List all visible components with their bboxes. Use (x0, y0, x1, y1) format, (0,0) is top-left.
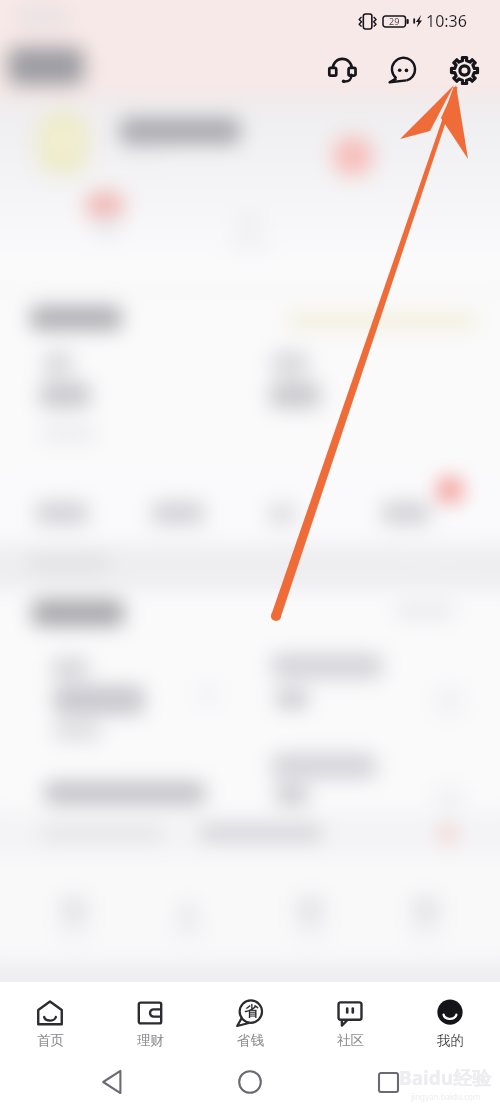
button[interactable]: Messages (381, 48, 425, 92)
button[interactable]: 省 (200, 990, 300, 1049)
button[interactable]: 理财 (100, 990, 200, 1049)
staticText: 我的 (437, 1032, 464, 1049)
button[interactable]: Back (86, 1056, 138, 1108)
staticText: 10:36 (426, 10, 467, 32)
button[interactable]: Customer service (320, 48, 364, 92)
staticText: 29 (389, 15, 400, 27)
staticText: 首页 (37, 1032, 64, 1049)
button[interactable]: 社区 (300, 990, 400, 1049)
staticText: jingyan.baidu.com (411, 1091, 481, 1102)
staticText: 省 (244, 1003, 258, 1021)
staticText: 理财 (137, 1032, 164, 1049)
button[interactable]: Recents (362, 1056, 414, 1108)
button[interactable]: Home (224, 1056, 276, 1108)
button[interactable]: 首页 (0, 990, 100, 1049)
button[interactable]: 我的 (400, 990, 500, 1049)
staticText: 社区 (337, 1032, 364, 1049)
staticText: Baidu经验 (399, 1065, 492, 1091)
button[interactable]: Settings (442, 48, 486, 92)
staticText: 省钱 (237, 1032, 264, 1049)
